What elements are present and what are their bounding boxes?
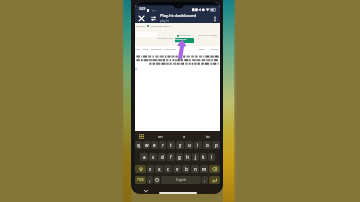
staticText: p [215, 142, 218, 148]
staticText: v [176, 166, 179, 172]
button[interactable]: r [159, 141, 166, 149]
staticText: m [202, 166, 207, 172]
staticText: e [153, 142, 156, 148]
button[interactable]: b [182, 165, 190, 173]
staticText: x [158, 166, 161, 172]
button[interactable]: settings [136, 24, 172, 27]
button[interactable]: English [161, 176, 201, 184]
staticText: upload file [179, 34, 191, 37]
button[interactable]: Shift [135, 165, 146, 173]
staticText: Generate now [157, 36, 173, 39]
staticText: Conversion demo 1 [150, 24, 172, 27]
staticText: on [158, 134, 163, 139]
staticText: Date [199, 47, 205, 50]
staticText: ?123 [137, 178, 144, 182]
button[interactable]: Page settings [149, 14, 158, 23]
staticText: Title [135, 47, 140, 50]
button[interactable]: More options [210, 14, 219, 23]
staticText: q [137, 142, 140, 148]
button[interactable]: on [148, 131, 172, 141]
button[interactable]: h [184, 153, 191, 161]
staticText: y [179, 142, 182, 148]
button[interactable]: i [194, 141, 202, 149]
button[interactable]: g [176, 153, 183, 161]
staticText: settings [136, 24, 145, 27]
button[interactable]: k [200, 153, 207, 161]
button[interactable]: Convert to speech [175, 38, 194, 43]
staticText: English [176, 178, 187, 182]
staticText: s [152, 154, 155, 160]
staticText: k [202, 154, 205, 160]
staticText: Convert to speech [175, 38, 194, 43]
staticText: h [186, 154, 189, 160]
staticText: Actions [210, 47, 219, 50]
staticText: Duration [151, 47, 162, 50]
button[interactable]: Backspace [209, 165, 220, 173]
button[interactable]: o [203, 141, 211, 149]
button[interactable]: e [151, 141, 158, 149]
button[interactable]: ?123 [135, 176, 146, 184]
button[interactable]: to [196, 131, 220, 141]
button[interactable]: v [173, 165, 181, 173]
button[interactable]: f [167, 153, 175, 161]
staticText: o [206, 142, 209, 148]
button[interactable]: Close [136, 13, 146, 23]
staticText: 3:29 [139, 7, 146, 11]
staticText: Play.ht dashboard [160, 13, 197, 19]
button[interactable]: n [191, 165, 199, 173]
button[interactable]: upload file [174, 33, 193, 37]
button[interactable]: u [185, 141, 193, 149]
staticText: a [143, 154, 146, 160]
button[interactable]: a [140, 153, 148, 161]
staticText: a [183, 134, 186, 139]
button[interactable]: use text-to-speech [197, 33, 219, 37]
button[interactable]: a [172, 131, 196, 141]
staticText: b [185, 166, 188, 172]
button[interactable]: s [149, 153, 157, 161]
button[interactable]: . [202, 176, 208, 184]
staticText: . [204, 177, 206, 183]
button[interactable]: c [164, 165, 172, 173]
button[interactable]: x [155, 165, 163, 173]
staticText: c [167, 166, 170, 172]
button[interactable]: d [158, 153, 166, 161]
button[interactable]: l [208, 153, 215, 161]
button[interactable]: Hide keyboard [141, 184, 151, 194]
button[interactable]: t [167, 141, 175, 149]
staticText: t [170, 142, 172, 148]
staticText: r [162, 142, 164, 148]
staticText: , [149, 177, 151, 183]
staticText: w [145, 142, 149, 148]
staticText: l [211, 154, 213, 160]
staticText: n [194, 166, 197, 172]
button[interactable]: j [192, 153, 199, 161]
staticText: use text-to-speech [198, 34, 218, 37]
button[interactable]: Emoji [154, 176, 160, 184]
staticText: to [206, 134, 210, 139]
staticText: j [195, 154, 197, 160]
staticText: Alignment [164, 47, 177, 50]
staticText: u [188, 142, 191, 148]
staticText: z [149, 166, 152, 172]
button[interactable]: q [135, 141, 142, 149]
button[interactable]: m [200, 165, 208, 173]
button[interactable]: w [143, 141, 150, 149]
staticText: f [170, 154, 172, 160]
button[interactable]: , [147, 176, 153, 184]
button[interactable]: Enter [209, 176, 220, 184]
staticText: d [161, 154, 164, 160]
button[interactable]: Open features menu [135, 131, 148, 141]
staticText: Voice [142, 47, 149, 50]
button[interactable]: y [176, 141, 184, 149]
staticText: g [178, 154, 181, 160]
staticText: i [197, 142, 199, 148]
button[interactable]: p [212, 141, 220, 149]
staticText: play.ht [160, 19, 169, 23]
button[interactable]: z [147, 165, 154, 173]
